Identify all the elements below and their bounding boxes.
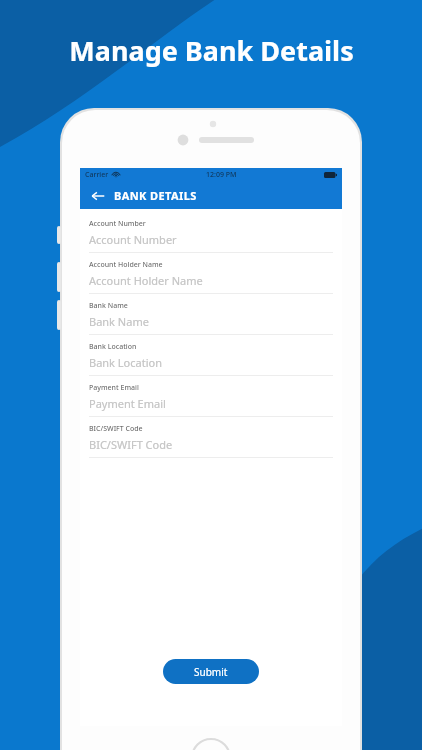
button[interactable]: Bank Name bbox=[89, 301, 333, 342]
staticText: Bank Name bbox=[89, 314, 149, 329]
button[interactable]: Account Number bbox=[89, 219, 333, 260]
staticText: 12:09 PM bbox=[206, 170, 237, 180]
staticText: Payment Email bbox=[89, 396, 166, 411]
button[interactable]: Payment Email bbox=[89, 383, 333, 424]
staticText: Submit bbox=[194, 665, 228, 679]
button[interactable]: Submit bbox=[163, 659, 259, 684]
button[interactable]: Back bbox=[80, 182, 342, 209]
staticText: Bank Location bbox=[89, 355, 162, 370]
staticText: Payment Email bbox=[89, 383, 139, 393]
staticText: Account Holder Name bbox=[89, 273, 203, 288]
staticText: BIC/SWIFT Code bbox=[89, 437, 173, 452]
staticText: BANK DETAILS bbox=[114, 188, 197, 203]
staticText: Bank Name bbox=[89, 301, 128, 311]
staticText: BIC/SWIFT Code bbox=[89, 424, 143, 434]
button[interactable]: Bank Location bbox=[89, 342, 333, 383]
staticText: Account Number bbox=[89, 232, 177, 247]
button[interactable]: Account Holder Name bbox=[89, 260, 333, 301]
staticText: Account Number bbox=[89, 219, 146, 229]
button[interactable]: Back bbox=[89, 187, 107, 205]
staticText: Bank Location bbox=[89, 342, 137, 352]
staticText: Carrier bbox=[85, 170, 109, 180]
staticText: Manage Bank Details bbox=[69, 32, 354, 69]
button[interactable]: BIC/SWIFT Code bbox=[89, 424, 333, 465]
staticText: Account Holder Name bbox=[89, 260, 163, 270]
